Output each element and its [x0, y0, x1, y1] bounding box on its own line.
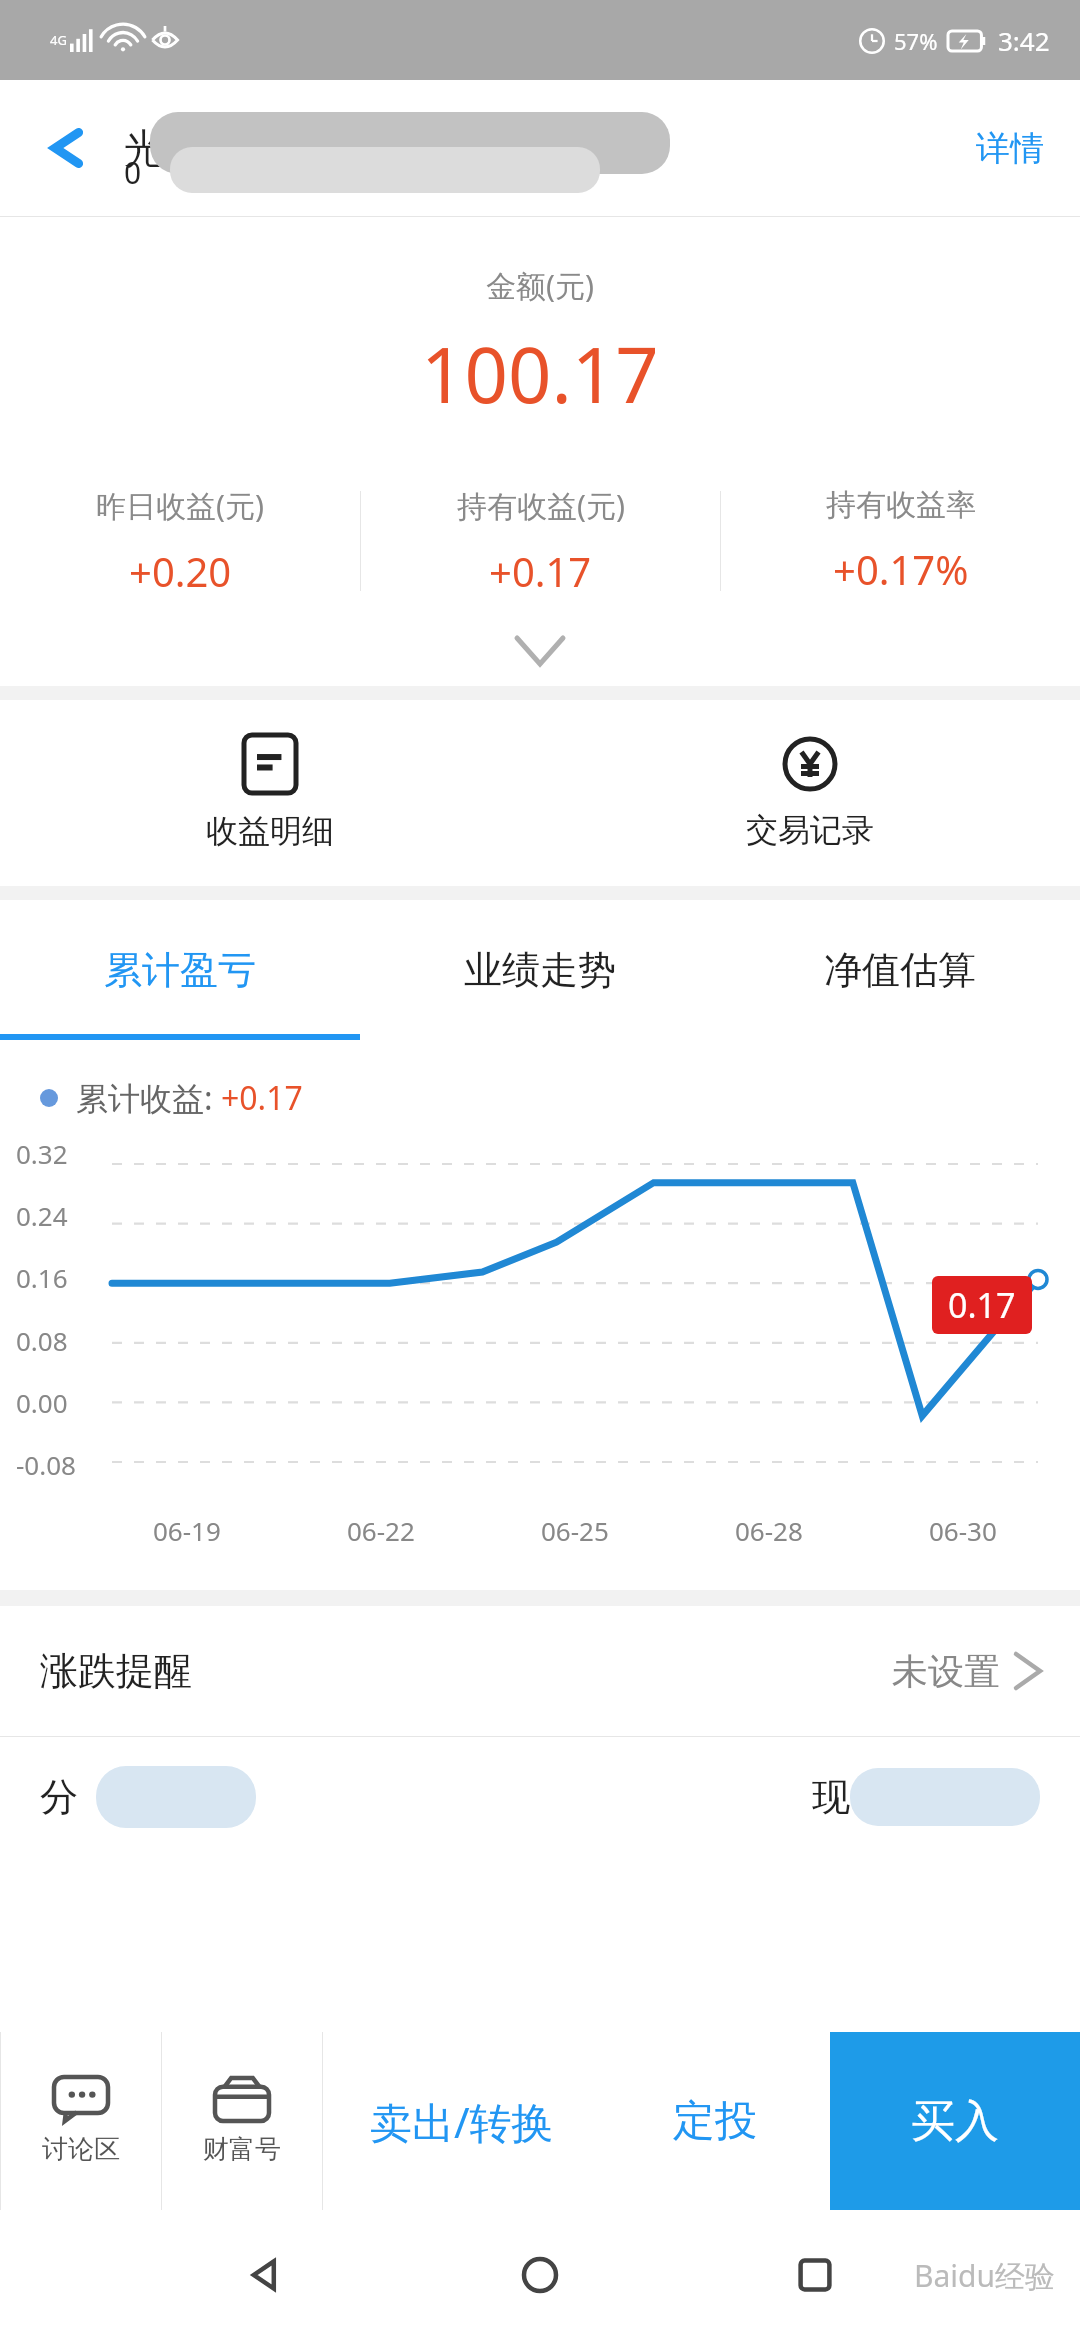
button[interactable]: Back: [230, 2240, 300, 2310]
staticText: 未设置: [892, 1649, 1000, 1694]
button[interactable]: 业绩走势: [360, 900, 720, 1040]
staticText: 0.16: [16, 1260, 68, 1295]
staticText: 讨论区: [42, 2133, 120, 2166]
staticText: 0.17: [948, 1282, 1016, 1328]
staticText: 06-30: [929, 1513, 997, 1548]
staticText: 持有收益(元): [457, 485, 625, 526]
staticText: 0.24: [16, 1198, 68, 1233]
staticText: 持有收益率: [826, 486, 976, 524]
staticText: 0 l0: [124, 152, 221, 193]
staticText: Baidu经验: [914, 2255, 1056, 2296]
staticText: 涨跌提醒: [40, 1647, 192, 1695]
staticText: +0.17%: [833, 542, 969, 596]
staticText: 累计盈亏: [104, 946, 256, 994]
staticText: 0.00: [16, 1385, 68, 1420]
button[interactable]: 交易记录: [540, 700, 1080, 886]
staticText: 定投: [673, 2095, 757, 2148]
staticText: 累计收益:: [76, 1076, 221, 1120]
staticText: 100.17: [421, 322, 659, 426]
staticText: 买入: [911, 2094, 999, 2149]
staticText: 交易记录: [746, 810, 874, 850]
staticText: +0.17: [489, 544, 592, 598]
staticText: 分: [40, 1773, 78, 1821]
staticText: 业绩走势: [464, 946, 616, 994]
staticText: 净值估算: [824, 946, 976, 994]
button[interactable]: Back: [30, 118, 90, 178]
staticText: 57%: [894, 26, 938, 56]
staticText: 卖出/转换: [370, 2093, 554, 2150]
staticText: 详情: [976, 127, 1044, 170]
button[interactable]: 持有收益(元): [361, 485, 720, 598]
button[interactable]: Expand: [0, 616, 1080, 686]
button[interactable]: 持有收益率: [721, 486, 1080, 596]
button[interactable]: 涨跌提醒: [0, 1606, 1080, 1736]
button[interactable]: 累计盈亏: [0, 900, 360, 1040]
staticText: 06-19: [153, 1513, 221, 1548]
button[interactable]: 讨论区: [1, 2032, 161, 2210]
button[interactable]: 卖出/转换: [323, 2032, 600, 2210]
button[interactable]: 收益明细: [0, 700, 540, 886]
staticText: 现: [812, 1773, 850, 1821]
button[interactable]: 财富号: [162, 2032, 322, 2210]
staticText: +0.17: [221, 1076, 303, 1120]
button[interactable]: 昨日收益(元): [0, 485, 360, 598]
button[interactable]: Home: [505, 2240, 575, 2310]
staticText: C: [635, 121, 661, 175]
staticText: 3:42: [998, 23, 1050, 58]
staticText: +0.20: [129, 544, 232, 598]
button[interactable]: 详情: [964, 117, 1056, 180]
staticText: 06-22: [347, 1513, 415, 1548]
staticText: 光: [124, 123, 164, 173]
button[interactable]: 净值估算: [720, 900, 1080, 1040]
button[interactable]: 定投: [600, 2032, 830, 2210]
staticText: 昨日收益(元): [96, 485, 264, 526]
staticText: 4G: [50, 31, 67, 49]
staticText: 0.32: [16, 1136, 68, 1171]
button[interactable]: 买入: [830, 2032, 1080, 2210]
staticText: 财富号: [203, 2133, 281, 2166]
staticText: -0.08: [16, 1447, 76, 1482]
staticText: 06-25: [541, 1513, 609, 1548]
staticText: 金额(元): [486, 265, 594, 306]
button[interactable]: Recents: [780, 2240, 850, 2310]
staticText: 0.08: [16, 1323, 68, 1358]
staticText: 06-28: [735, 1513, 803, 1548]
staticText: 收益明细: [206, 811, 334, 851]
